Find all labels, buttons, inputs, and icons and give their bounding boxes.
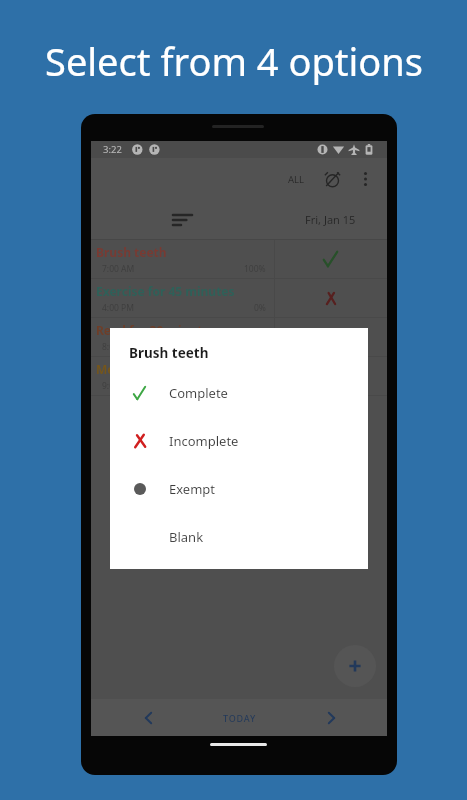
- staticText: Select from 4 options: [45, 35, 423, 87]
- staticText: Exempt: [169, 480, 216, 498]
- button[interactable]: Complete: [110, 369, 368, 417]
- button[interactable]: More options: [348, 162, 382, 196]
- button[interactable]: Add task: [334, 645, 376, 687]
- staticText: 4:00 PM: [102, 302, 134, 314]
- staticText: ALL: [288, 173, 305, 186]
- button[interactable]: Blank: [110, 513, 368, 561]
- staticText: Incomplete: [169, 432, 239, 450]
- staticText: Read for 30 minutes: [96, 322, 216, 338]
- staticText: 3:22: [103, 143, 122, 156]
- staticText: Exercise for 45 minutes: [96, 283, 235, 299]
- button[interactable]: Meditate: [91, 357, 387, 395]
- staticText: Brush teeth: [129, 344, 209, 362]
- button[interactable]: Alarms off: [315, 162, 350, 197]
- staticText: 9:00 PM: [102, 380, 134, 392]
- staticText: TODAY: [223, 712, 256, 724]
- button[interactable]: Incomplete: [110, 417, 368, 465]
- staticText: Meditate: [96, 361, 151, 377]
- button[interactable]: Read for 30 minutes: [91, 318, 387, 356]
- staticText: 7:00 AM: [102, 263, 135, 275]
- staticText: 8:00 PM: [102, 341, 134, 353]
- staticText: Fri, Jan 15: [305, 212, 356, 227]
- staticText: 100%: [244, 263, 266, 275]
- button[interactable]: Previous day: [126, 699, 170, 736]
- button[interactable]: Next day: [309, 699, 353, 736]
- staticText: 0%: [254, 302, 266, 314]
- staticText: Blank: [169, 528, 204, 546]
- staticText: Complete: [169, 384, 228, 402]
- button[interactable]: Exercise for 45 minutes: [91, 279, 387, 317]
- button[interactable]: Brush teeth: [91, 240, 387, 278]
- button[interactable]: Exempt: [110, 465, 368, 513]
- staticText: Brush teeth: [96, 244, 167, 260]
- button[interactable]: ALL: [278, 164, 314, 194]
- button[interactable]: TODAY: [194, 699, 284, 736]
